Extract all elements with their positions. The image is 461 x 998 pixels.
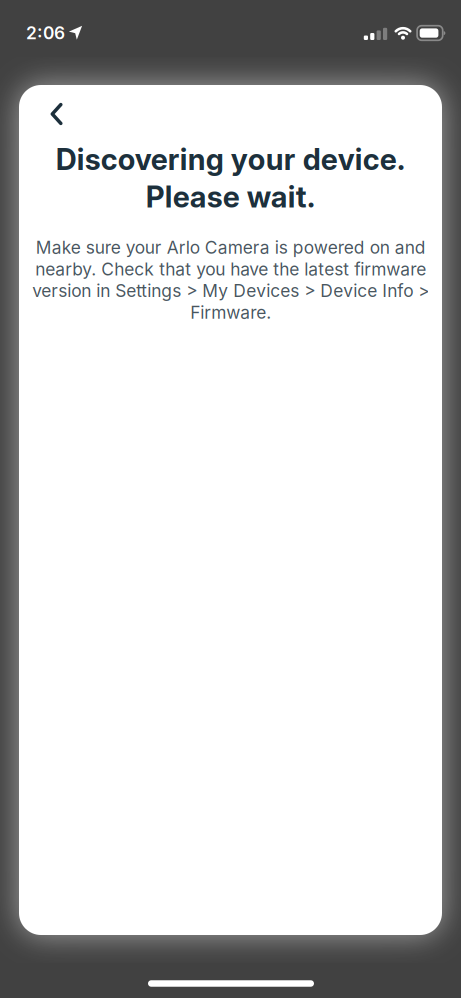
staticText: Make sure your Arlo Camera is powered on… [32,237,429,323]
button[interactable] [34,92,78,136]
staticText: Discovering your device. Please wait. [55,142,405,214]
staticText: 2:06 [26,23,65,43]
